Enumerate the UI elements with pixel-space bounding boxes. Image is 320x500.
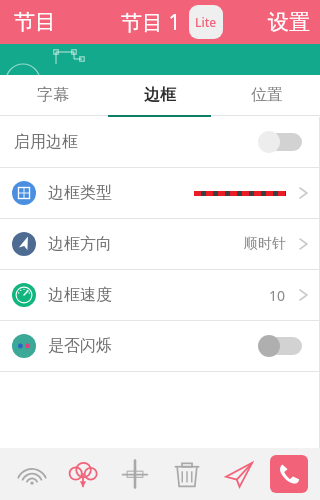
staticText: 边框方向 — [48, 234, 112, 254]
staticText: Lite — [195, 14, 217, 30]
staticText: 边框 — [144, 85, 176, 105]
button[interactable]: 字幕 — [0, 75, 106, 115]
button[interactable]: Delete — [167, 454, 207, 494]
button[interactable]: 是否闪烁 — [0, 321, 320, 371]
staticText: 边框速度 — [48, 285, 112, 305]
button[interactable]: 边框方向 — [0, 219, 320, 269]
staticText: 节目 1 — [121, 8, 181, 37]
button[interactable]: 位置 — [213, 75, 320, 115]
button[interactable]: 节目 — [14, 9, 56, 35]
button[interactable]: 设置 — [268, 9, 310, 35]
button[interactable]: Lite — [189, 5, 223, 39]
staticText: 位置 — [251, 85, 283, 105]
button[interactable]: Adjust — [115, 454, 155, 494]
staticText: 边框类型 — [48, 183, 112, 203]
staticText: 是否闪烁 — [48, 336, 112, 356]
staticText: 字幕 — [37, 85, 69, 105]
button[interactable]: Upload to cloud — [63, 454, 103, 494]
button[interactable]: 启用边框 — [0, 117, 320, 167]
staticText: 顺时针 — [244, 235, 286, 253]
button[interactable]: WiFi — [12, 454, 52, 494]
staticText: 启用边框 — [14, 132, 78, 152]
staticText: 10 — [269, 286, 286, 305]
button[interactable]: 边框速度 — [0, 270, 320, 320]
button[interactable]: 边框类型 — [0, 168, 320, 218]
button[interactable]: Call — [270, 455, 308, 493]
button[interactable]: Send — [219, 454, 259, 494]
button[interactable]: 边框 — [106, 75, 213, 115]
